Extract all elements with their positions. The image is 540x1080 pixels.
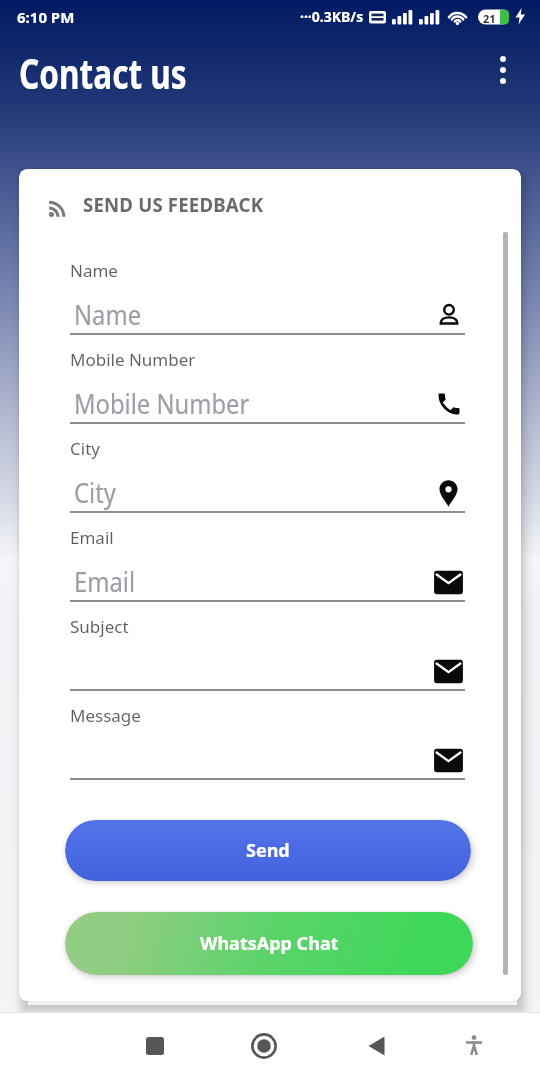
staticText: Contact us: [19, 45, 187, 101]
button[interactable]: Name: [70, 263, 465, 352]
staticText: 21: [483, 11, 496, 26]
staticText: 6:10 PM: [17, 7, 75, 27]
staticText: Subject: [70, 615, 129, 638]
staticText: Email: [70, 526, 114, 549]
staticText: Message: [70, 704, 141, 727]
button[interactable]: Mobile Number: [70, 352, 465, 441]
staticText: Name: [74, 296, 141, 333]
staticText: Send: [246, 838, 290, 863]
button[interactable]: [251, 1033, 277, 1059]
staticText: City: [70, 437, 100, 460]
button[interactable]: Subject: [70, 619, 465, 708]
button[interactable]: Send: [65, 820, 471, 881]
button[interactable]: WhatsApp Chat: [65, 912, 473, 975]
staticText: Mobile Number: [70, 348, 196, 371]
staticText: SEND US FEEDBACK: [83, 191, 263, 218]
button[interactable]: [488, 50, 518, 94]
staticText: Name: [70, 259, 118, 282]
staticText: City: [74, 474, 116, 511]
button[interactable]: Message: [70, 708, 465, 797]
button[interactable]: City: [70, 441, 465, 530]
button[interactable]: Email: [70, 530, 465, 619]
button[interactable]: [363, 1033, 389, 1059]
staticText: WhatsApp Chat: [200, 931, 339, 956]
staticText: ···0.3KB/s: [300, 7, 364, 26]
button[interactable]: [461, 1033, 487, 1059]
button[interactable]: [142, 1033, 168, 1059]
staticText: Mobile Number: [74, 385, 250, 422]
staticText: Email: [74, 563, 135, 600]
